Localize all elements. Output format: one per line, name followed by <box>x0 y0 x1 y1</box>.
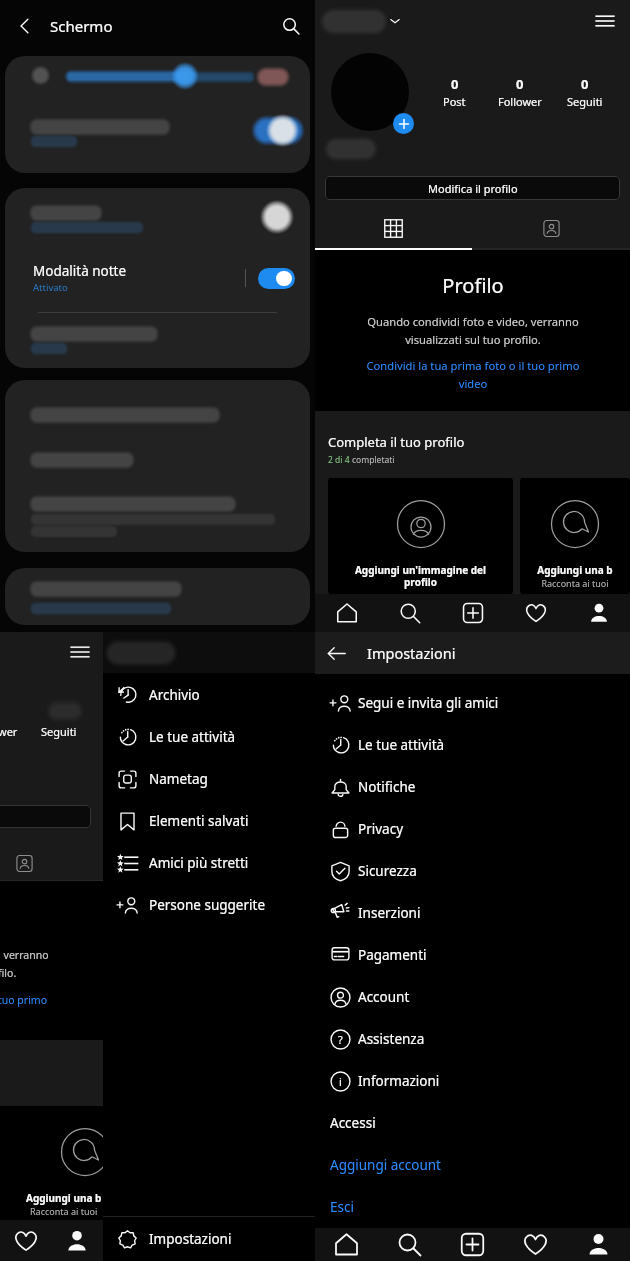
button[interactable]: Posts grid <box>315 208 472 248</box>
button[interactable]: Create <box>441 594 504 632</box>
staticText: Pagamenti <box>358 946 427 964</box>
button[interactable]: Privacy <box>315 808 630 850</box>
staticText: Archivio <box>149 686 200 704</box>
staticText: Impostazioni <box>367 643 456 663</box>
staticText: Notifiche <box>358 778 416 796</box>
button[interactable]: Modifica il profilo <box>325 176 620 200</box>
button[interactable]: Aggiungi account <box>315 1144 630 1186</box>
button[interactable]: Esci <box>315 1186 630 1228</box>
button[interactable]: Home <box>315 594 378 632</box>
staticText: Aggiungi una b <box>530 563 620 577</box>
button[interactable]: Archivio <box>103 674 315 716</box>
staticText: Sicurezza <box>358 862 417 880</box>
staticText: Completa il tuo profilo <box>328 433 465 451</box>
staticText: Privacy <box>358 820 404 838</box>
staticText: Amici più stretti <box>149 854 249 872</box>
staticText: Elementi salvati <box>149 812 249 830</box>
button[interactable]: Nametag <box>103 758 315 800</box>
staticText: Account <box>358 988 410 1006</box>
button[interactable]: Amici più stretti <box>103 842 315 884</box>
staticText: Accessi <box>330 1114 376 1132</box>
staticText: Le tue attività <box>149 728 236 746</box>
staticText: i <box>339 1074 342 1089</box>
button[interactable]: Notifiche <box>315 766 630 808</box>
button[interactable]: Back <box>0 1 50 51</box>
button[interactable]: Search <box>378 1228 441 1261</box>
button[interactable]: Pagamenti <box>315 934 630 976</box>
button[interactable]: Activity <box>504 1228 567 1261</box>
button[interactable]: Profile <box>567 594 630 632</box>
staticText: Racconta ai tuoi <box>524 577 626 589</box>
staticText: 0 <box>581 75 589 93</box>
button[interactable]: 0 <box>487 75 552 109</box>
button[interactable]: i <box>315 1060 630 1102</box>
button[interactable]: Search <box>378 594 441 632</box>
button[interactable]: Profile <box>567 1228 630 1261</box>
button[interactable]: Create <box>441 1228 504 1261</box>
button[interactable]: Search <box>267 2 315 50</box>
staticText: Seguiti <box>41 724 77 739</box>
button[interactable]: Impostazioni <box>103 1217 315 1261</box>
staticText: Quando condividi foto e video, verranno … <box>357 314 589 347</box>
button[interactable]: Le tue attività <box>315 724 630 766</box>
button[interactable]: Persone suggerite <box>103 884 315 926</box>
staticText: Aggiungi un'immagine del profilo <box>338 563 503 589</box>
button[interactable]: Modalità notte <box>5 256 310 300</box>
staticText: 0 <box>516 75 524 93</box>
button[interactable]: Activity <box>504 594 567 632</box>
button[interactable]: Elementi salvati <box>103 800 315 842</box>
staticText: Informazioni <box>358 1072 440 1090</box>
staticText: 2 di 4 <box>328 454 352 466</box>
button[interactable]: Home <box>315 1228 378 1261</box>
staticText: Profilo <box>442 272 504 299</box>
staticText: Esci <box>330 1198 354 1216</box>
staticText: Assistenza <box>358 1030 425 1048</box>
staticText: wer <box>0 724 18 739</box>
button[interactable]: Back <box>315 632 357 674</box>
staticText: Nametag <box>149 770 208 788</box>
staticText: ? <box>338 1032 343 1047</box>
button[interactable]: Account <box>315 976 630 1018</box>
button[interactable]: Segui e invita gli amici <box>315 682 630 724</box>
staticText: Post <box>443 94 466 109</box>
button[interactable]: Add to story <box>393 113 414 134</box>
staticText: Modalità notte <box>33 262 127 280</box>
staticText: Aggiungi una b <box>26 1191 102 1205</box>
staticText: completati <box>352 454 395 466</box>
staticText: Inserzioni <box>358 904 421 922</box>
staticText: , verranno <box>0 948 49 962</box>
button[interactable]: ? <box>315 1018 630 1060</box>
button[interactable]: Tagged <box>472 208 630 248</box>
button[interactable]: Condividi la tua prima foto o il tuo pri… <box>357 358 589 391</box>
button[interactable]: Aggiungi una b <box>520 478 630 594</box>
button[interactable]: 0 <box>552 75 617 109</box>
staticText: Persone suggerite <box>149 896 266 914</box>
staticText: Aggiungi account <box>330 1156 441 1174</box>
staticText: filo. <box>0 966 17 980</box>
button[interactable]: 0 <box>422 75 487 109</box>
button[interactable]: Sicurezza <box>315 850 630 892</box>
button[interactable]: Aggiungi un'immagine del profilo <box>328 478 513 594</box>
staticText: Racconta ai tuoi <box>30 1205 98 1217</box>
staticText: Le tue attività <box>358 736 445 754</box>
staticText: Attivato <box>33 281 68 294</box>
staticText: Schermo <box>50 16 113 36</box>
button[interactable]: Menu <box>590 6 620 36</box>
staticText: Modifica il profilo <box>428 181 518 196</box>
staticText: tuo primo <box>0 993 48 1007</box>
button[interactable]: Le tue attività <box>103 716 315 758</box>
staticText: Seguiti <box>567 94 603 109</box>
staticText: Follower <box>498 94 542 109</box>
button[interactable]: Inserzioni <box>315 892 630 934</box>
staticText: Segui e invita gli amici <box>358 694 499 712</box>
staticText: Impostazioni <box>149 1230 232 1248</box>
staticText: 0 <box>451 75 459 93</box>
